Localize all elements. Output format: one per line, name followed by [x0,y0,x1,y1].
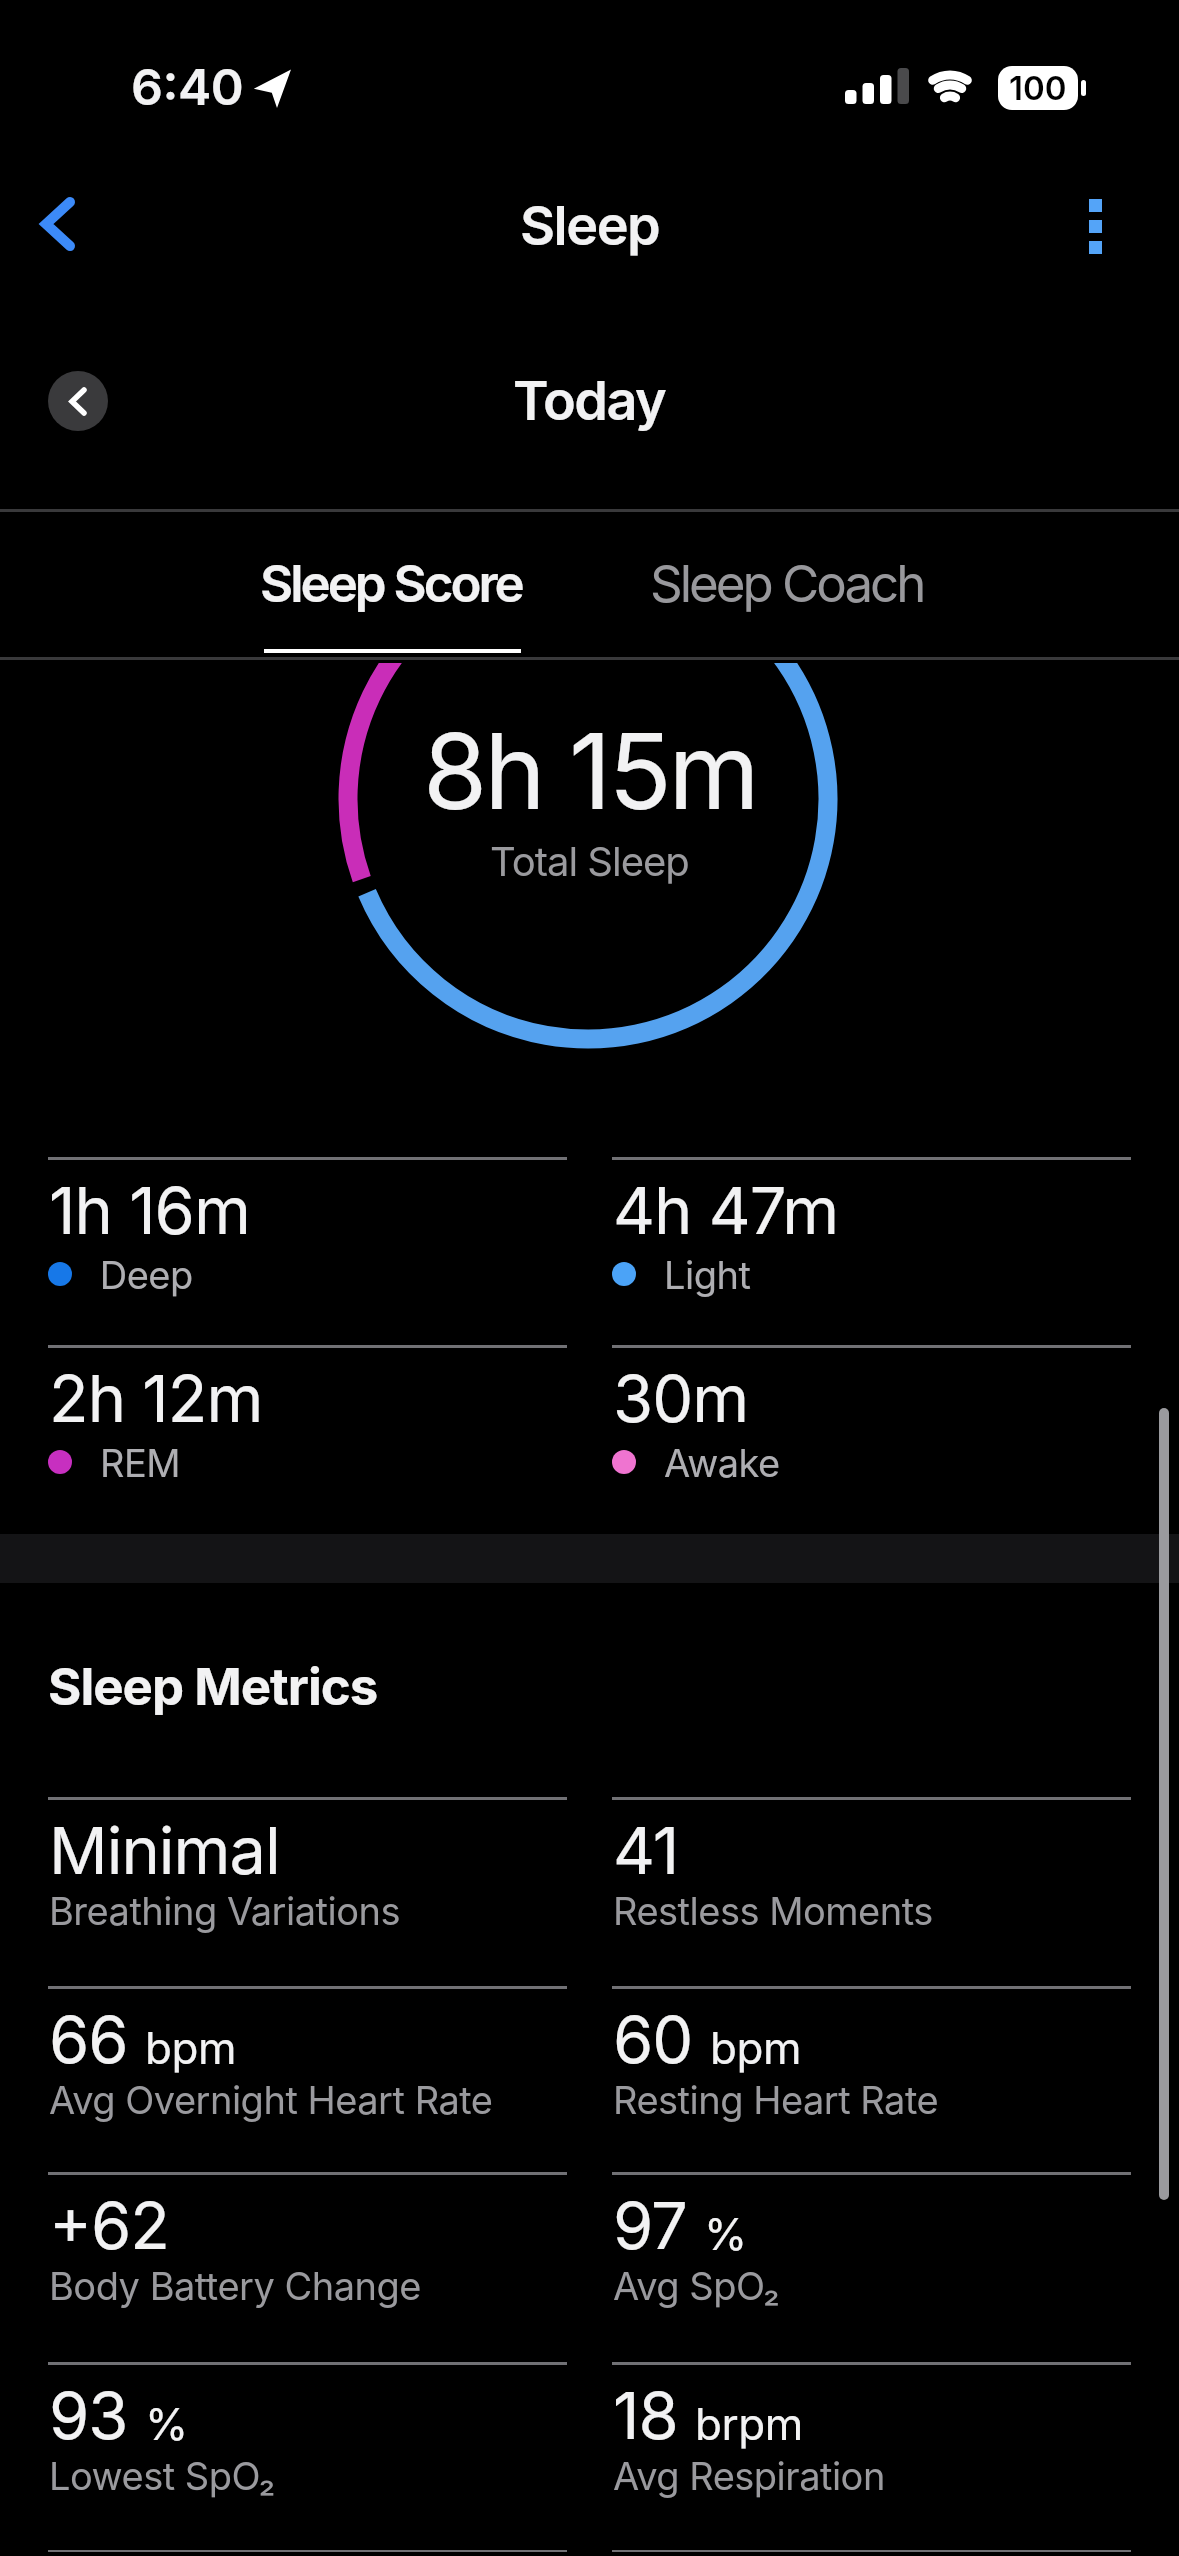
staticText: Sleep Metrics [48,1656,378,1718]
staticText: 66 [49,2000,128,2079]
staticText: REM [100,1440,181,1486]
staticText: Minimal [49,1811,280,1890]
staticText: 6:40 [131,57,244,117]
staticText: Light [664,1252,751,1298]
staticText: Lowest SpO₂ [49,2453,275,2499]
staticText: 1h 16m [49,1171,250,1250]
button[interactable] [22,184,98,264]
staticText: bpm [710,2021,801,2074]
staticText: Avg Respiration [613,2453,885,2499]
button[interactable]: 30m [612,1345,1131,1523]
staticText: brpm [695,2397,803,2450]
staticText: +62 [49,2186,169,2265]
staticText: Deep [100,1252,193,1298]
button[interactable]: 93 [48,2362,567,2546]
button[interactable]: 66 [48,1986,567,2170]
staticText: Breathing Variations [49,1888,400,1934]
staticText: Resting Heart Rate [613,2077,939,2123]
staticText: 97 [613,2186,687,2265]
staticText: 4h 47m [613,1171,839,1250]
button[interactable]: 4h 47m [612,1157,1131,1335]
button[interactable]: 1h 16m [48,1157,567,1335]
button[interactable]: +62 [48,2172,567,2356]
staticText: Sleep Score [260,553,522,615]
staticText: 18 [613,2376,678,2455]
staticText: 30m [613,1359,749,1438]
button[interactable]: 2h 12m [48,1345,567,1523]
staticText: Body Battery Change [49,2263,421,2309]
button[interactable] [1055,186,1135,266]
button[interactable]: Sleep Coach [537,525,1037,643]
staticText: Avg Overnight Heart Rate [49,2077,493,2123]
staticText: bpm [145,2021,236,2074]
staticText: Sleep Coach [650,553,924,615]
button[interactable]: Sleep Score [141,525,641,643]
staticText: 60 [613,2000,693,2079]
staticText: 41 [613,1811,679,1890]
button[interactable]: 97 [612,2172,1131,2356]
staticText: % [145,2397,188,2450]
staticText: 100 [1009,68,1067,108]
button[interactable]: 60 [612,1986,1131,2170]
staticText: 93 [49,2376,128,2455]
staticText: % [704,2207,747,2260]
staticText: Avg SpO₂ [613,2263,780,2309]
button[interactable] [48,371,108,431]
staticText: Awake [664,1440,780,1486]
staticText: 8h 15m [423,708,757,834]
button[interactable]: Minimal [48,1797,567,1981]
staticText: Restless Moments [613,1888,933,1934]
staticText: Today [513,368,666,433]
staticText: 2h 12m [49,1359,263,1438]
button[interactable]: 18 [612,2362,1131,2546]
staticText: Sleep [520,193,660,258]
button[interactable]: 41 [612,1797,1131,1981]
staticText: Total Sleep [490,837,689,885]
